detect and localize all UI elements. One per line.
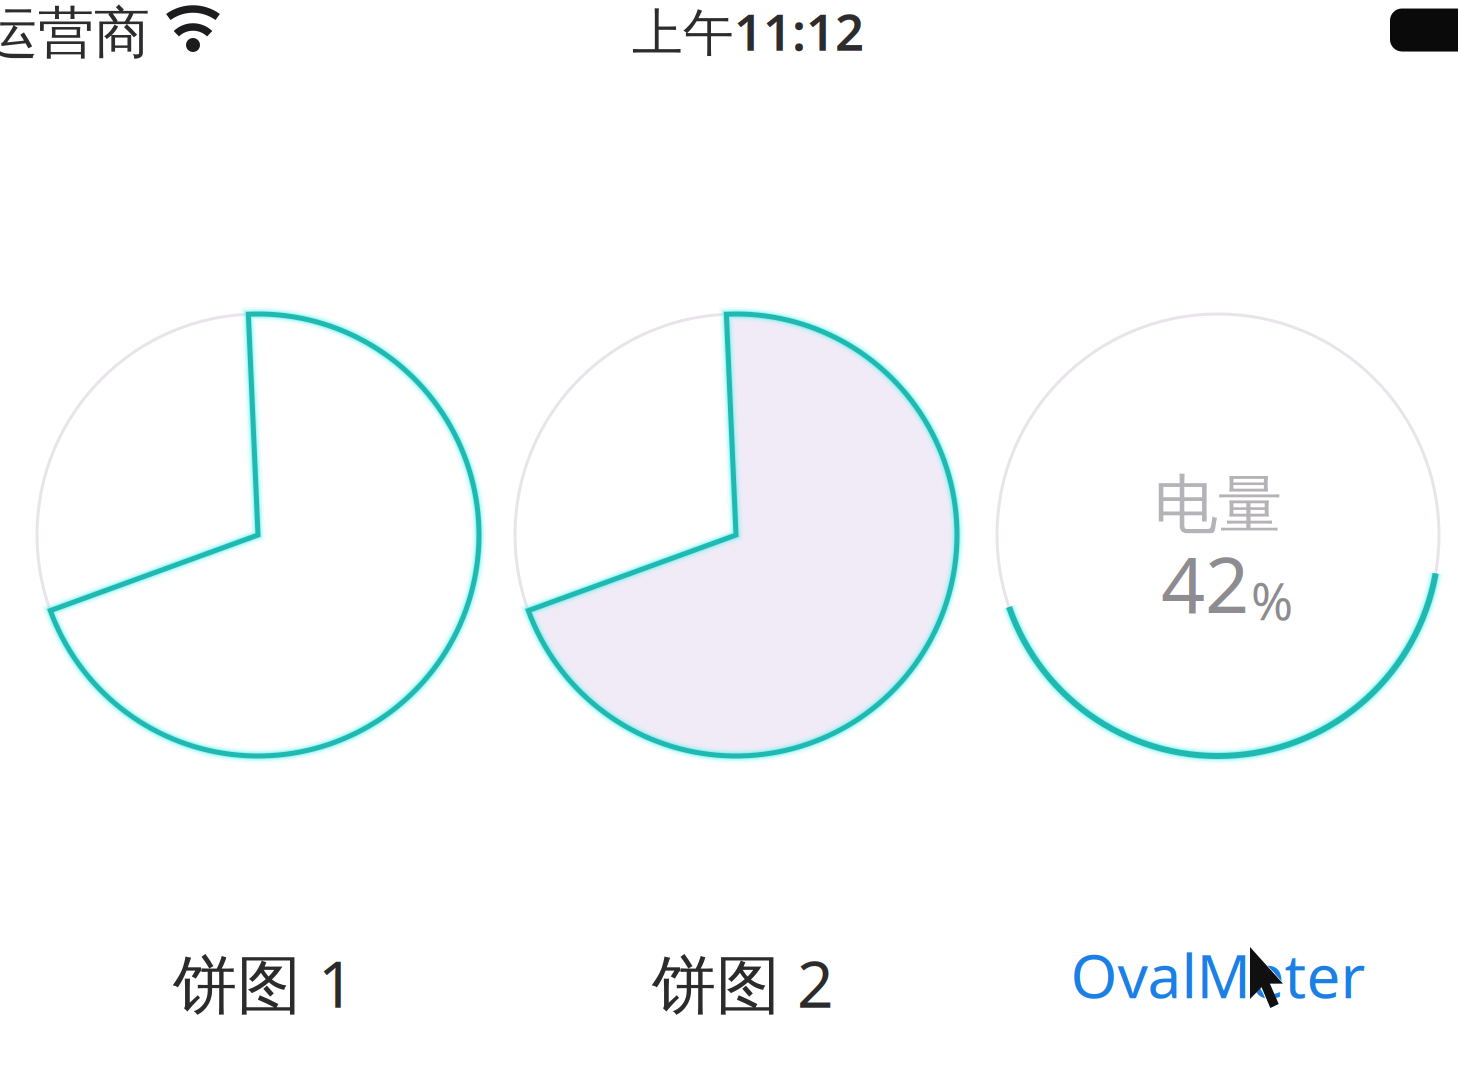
staticText: 上午11:12 xyxy=(632,0,864,65)
staticText: 饼图 1 xyxy=(173,940,355,1025)
staticText: 运营商 xyxy=(0,0,150,67)
staticText: 42 xyxy=(1161,532,1249,634)
staticText: OvalMeter xyxy=(1070,935,1365,1015)
staticText: 饼图 2 xyxy=(652,940,834,1025)
staticText: % xyxy=(1251,567,1293,634)
staticText: 电量 xyxy=(1154,466,1282,544)
button[interactable]: OvalMeter xyxy=(1058,935,1378,1015)
